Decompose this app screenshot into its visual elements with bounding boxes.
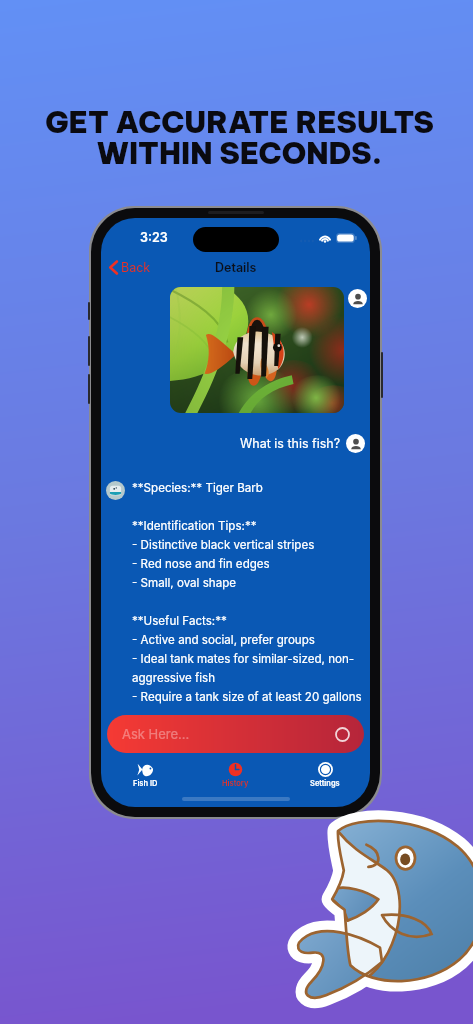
staticText: What is this fish? <box>240 436 341 451</box>
staticText: Details <box>215 260 257 275</box>
button[interactable]: Back <box>101 257 161 278</box>
staticText: **Species:** Tiger Barb **Identification… <box>132 481 362 704</box>
staticText: 3:23 <box>140 230 168 245</box>
staticText: Fish ID <box>133 779 158 788</box>
staticText: Ask Here... <box>122 726 190 742</box>
button[interactable]: Fish ID <box>101 760 190 788</box>
button[interactable]: History <box>190 760 280 788</box>
staticText: GET ACCURATE RESULTS WITHIN SECONDS. <box>45 103 434 171</box>
staticText: History <box>222 779 249 788</box>
staticText: Back <box>121 260 151 275</box>
other: Voice input <box>335 727 350 742</box>
button[interactable]: Ask Here... <box>107 715 364 753</box>
staticText: Settings <box>310 779 340 788</box>
button[interactable]: Settings <box>280 760 370 788</box>
